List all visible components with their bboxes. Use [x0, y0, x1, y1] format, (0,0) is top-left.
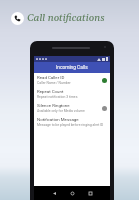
staticText: Incoming Calls — [56, 65, 88, 71]
staticText: Read Caller ID — [37, 75, 65, 80]
staticText: Repeat Count — [37, 89, 64, 94]
staticText: Silence Ringtone — [37, 103, 70, 108]
staticText: Caller Name / Number — [37, 81, 71, 85]
button[interactable]: Home — [69, 190, 75, 196]
button[interactable]: Notification Message — [34, 115, 110, 129]
button[interactable]: Silence Ringtone — [34, 101, 110, 115]
button[interactable]: Back — [51, 190, 57, 196]
staticText: Repeat notification 3 times — [37, 95, 78, 99]
button[interactable]: Recent apps — [87, 190, 93, 196]
staticText: Message to be played before ringing aler… — [37, 123, 104, 127]
staticText: Call notifications — [27, 12, 105, 25]
button[interactable]: Repeat Count — [34, 87, 110, 101]
button[interactable]: Read Caller ID — [34, 73, 110, 87]
staticText: Notification Message — [37, 117, 79, 122]
staticText: Available only for Media volume — [37, 109, 85, 113]
